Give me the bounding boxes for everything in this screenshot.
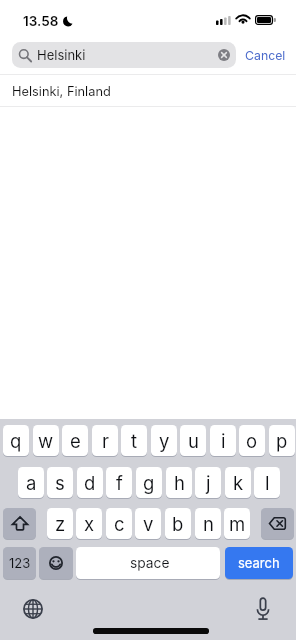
staticText: h: [174, 472, 185, 494]
staticText: e: [70, 430, 81, 452]
button[interactable]: t: [121, 425, 147, 456]
staticText: m: [229, 513, 246, 535]
button[interactable]: Backspace: [261, 508, 294, 539]
staticText: Helsinki, Finland: [12, 84, 111, 99]
staticText: p: [276, 430, 288, 452]
staticText: 123: [9, 555, 31, 571]
staticText: Cancel: [245, 48, 286, 63]
button[interactable]: z: [47, 508, 73, 539]
staticText: t: [131, 430, 138, 452]
button[interactable]: b: [165, 508, 191, 539]
button[interactable]: k: [225, 467, 251, 498]
button[interactable]: r: [92, 425, 118, 456]
button[interactable]: q: [3, 425, 29, 456]
staticText: d: [84, 472, 96, 494]
staticText: g: [143, 472, 155, 494]
button[interactable]: i: [210, 425, 236, 456]
button[interactable]: y: [151, 425, 177, 456]
staticText: b: [172, 513, 184, 535]
button[interactable]: Clear text: [218, 49, 230, 61]
staticText: 13.58: [23, 13, 59, 29]
staticText: search: [238, 555, 280, 571]
staticText: r: [102, 430, 109, 452]
staticText: y: [159, 430, 170, 452]
staticText: j: [206, 472, 211, 494]
button[interactable]: a: [18, 467, 44, 498]
button[interactable]: Shift: [3, 508, 36, 539]
staticText: a: [26, 472, 37, 494]
button[interactable]: Dictation: [256, 597, 270, 621]
staticText: c: [114, 513, 125, 535]
button[interactable]: v: [135, 508, 161, 539]
staticText: i: [221, 430, 226, 452]
button[interactable]: Helsinki, Finland: [0, 75, 296, 107]
button[interactable]: x: [76, 508, 102, 539]
staticText: s: [55, 472, 65, 494]
staticText: Helsinki: [37, 47, 86, 63]
button[interactable]: p: [269, 425, 295, 456]
button[interactable]: Emoji: [39, 547, 73, 579]
staticText: u: [188, 430, 199, 452]
button[interactable]: Switch keyboard: [23, 599, 43, 619]
staticText: f: [116, 472, 123, 494]
staticText: z: [55, 513, 66, 535]
button[interactable]: w: [33, 425, 59, 456]
staticText: n: [203, 513, 214, 535]
button[interactable]: e: [62, 425, 88, 456]
button[interactable]: c: [106, 508, 132, 539]
button[interactable]: search: [225, 547, 293, 579]
button[interactable]: f: [106, 467, 132, 498]
button[interactable]: s: [47, 467, 73, 498]
staticText: q: [10, 430, 22, 452]
button[interactable]: m: [224, 508, 250, 539]
button[interactable]: l: [254, 467, 280, 498]
staticText: space: [130, 555, 170, 572]
button[interactable]: Helsinki: [12, 42, 236, 68]
button[interactable]: space: [76, 547, 220, 579]
button[interactable]: j: [195, 467, 221, 498]
staticText: o: [246, 430, 258, 452]
staticText: x: [84, 513, 95, 535]
staticText: l: [265, 472, 270, 494]
button[interactable]: d: [77, 467, 103, 498]
button[interactable]: 123: [3, 547, 36, 579]
button[interactable]: h: [166, 467, 192, 498]
button[interactable]: g: [136, 467, 162, 498]
staticText: w: [38, 430, 54, 452]
staticText: v: [143, 513, 154, 535]
button[interactable]: Cancel: [240, 42, 291, 68]
button[interactable]: u: [180, 425, 206, 456]
staticText: k: [233, 472, 244, 494]
button[interactable]: n: [195, 508, 221, 539]
button[interactable]: o: [239, 425, 265, 456]
